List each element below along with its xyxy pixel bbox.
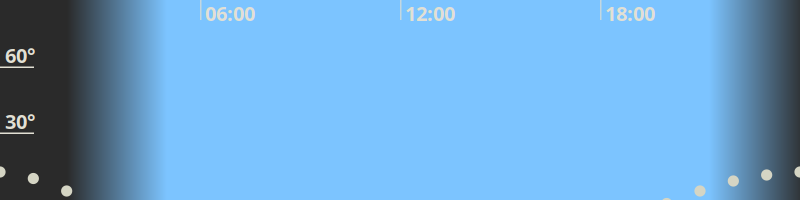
staticText: 18:00	[605, 0, 655, 27]
staticText: 60°	[5, 42, 35, 69]
staticText: 30°	[5, 108, 35, 135]
staticText: 12:00	[405, 0, 455, 27]
staticText: 06:00	[205, 0, 255, 27]
